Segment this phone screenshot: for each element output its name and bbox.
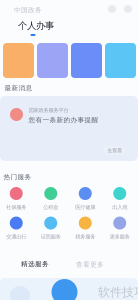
staticText: 更多服务 [110, 234, 130, 240]
staticText: 精选服务 [21, 260, 49, 268]
staticText: 税务服务 [75, 234, 95, 240]
button[interactable] [3, 43, 34, 78]
button[interactable]: 个人办事 [18, 20, 54, 31]
staticText: 去查看 [107, 147, 122, 154]
button[interactable] [37, 43, 68, 78]
staticText: 医疗健康 [75, 204, 95, 211]
button[interactable] [105, 43, 136, 78]
button[interactable]: 更多服务 [102, 217, 137, 240]
button[interactable]: 税务服务 [68, 217, 102, 240]
button[interactable]: 证照服务 [33, 217, 68, 240]
staticText: 查看更多 [76, 260, 104, 269]
button[interactable]: Scan [124, 5, 132, 13]
staticText: 个人办事 [18, 20, 54, 31]
staticText: 公积金 [43, 204, 58, 211]
button[interactable]: 出入境 [102, 187, 137, 211]
staticText: 国家政务服务平台 [28, 107, 68, 114]
button[interactable]: 医疗健康 [68, 187, 102, 211]
staticText: 热门服务 [3, 173, 31, 181]
button[interactable]: 社保服务 [0, 187, 33, 211]
button[interactable]: Search [108, 5, 116, 13]
staticText: 交通出行 [6, 234, 26, 240]
button[interactable]: 国家政务服务平台 [0, 96, 138, 161]
staticText: 出入境 [112, 204, 127, 211]
button[interactable] [0, 278, 138, 300]
staticText: 最新消息 [4, 84, 32, 92]
staticText: 您有一条新的办事提醒 [28, 116, 98, 124]
button[interactable]: 公积金 [33, 187, 68, 211]
button[interactable] [71, 43, 102, 78]
button[interactable]: 交通出行 [0, 217, 33, 240]
staticText: 软件技巧 [98, 285, 138, 300]
staticText: 证照服务 [41, 234, 61, 240]
staticText: 中国政务 [14, 6, 42, 14]
staticText: 社保服务 [6, 204, 26, 211]
